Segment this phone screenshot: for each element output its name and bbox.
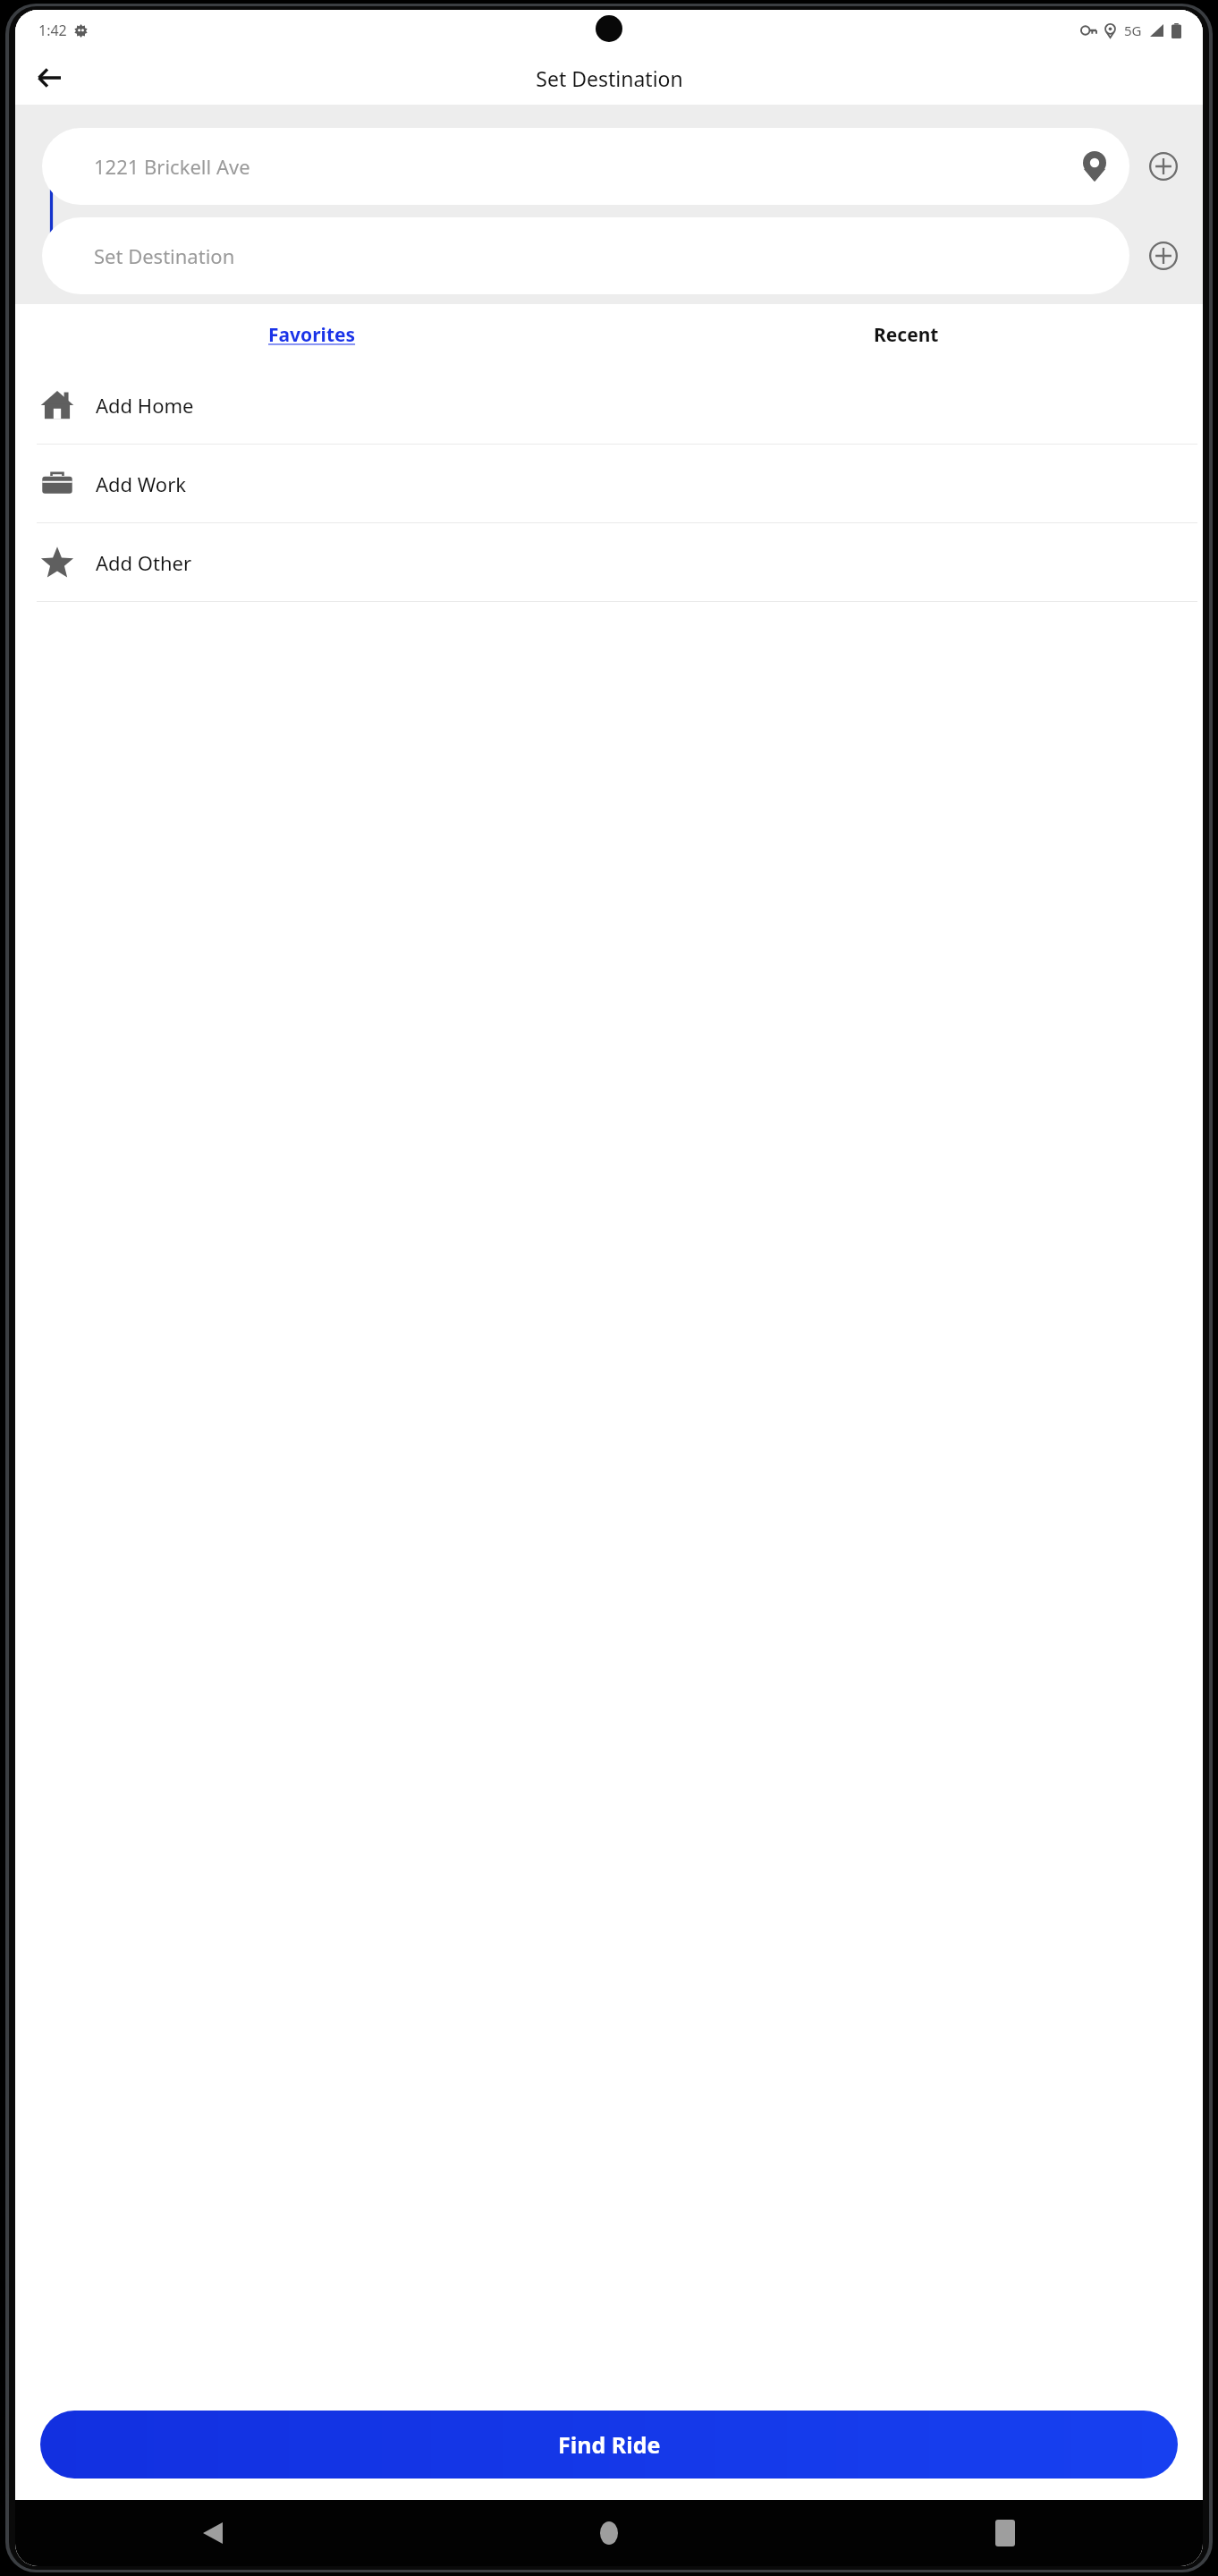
staticText: 1221 Brickell Ave — [94, 153, 1083, 180]
button[interactable]: Back — [28, 56, 71, 99]
staticText: 1:42 — [38, 21, 67, 40]
staticText: Add Other — [96, 549, 192, 576]
button[interactable]: Back — [15, 2500, 410, 2566]
staticText: Favorites — [268, 322, 356, 348]
button[interactable]: Favorites — [15, 304, 609, 366]
button[interactable]: Recents — [807, 2500, 1203, 2566]
staticText: Add Home — [96, 392, 194, 419]
button[interactable]: Add Home — [15, 366, 1203, 444]
button[interactable]: 1221 Brickell Ave — [42, 128, 1129, 205]
button[interactable]: Add stop — [1142, 234, 1185, 277]
button[interactable]: Add stop — [1142, 145, 1185, 188]
button[interactable]: Find Ride — [40, 2411, 1178, 2479]
staticText: Set Destination — [536, 64, 683, 92]
button[interactable]: Add Work — [15, 445, 1203, 522]
staticText: Recent — [874, 322, 939, 348]
staticText: Add Work — [96, 470, 187, 497]
staticText: Set Destination — [94, 242, 1106, 269]
button[interactable]: Set Destination — [42, 217, 1129, 294]
staticText: Find Ride — [558, 2429, 661, 2460]
button[interactable]: Add Other — [15, 523, 1203, 601]
button[interactable]: Recent — [609, 304, 1203, 366]
button[interactable]: Home — [410, 2500, 807, 2566]
staticText: 5G — [1124, 21, 1142, 39]
